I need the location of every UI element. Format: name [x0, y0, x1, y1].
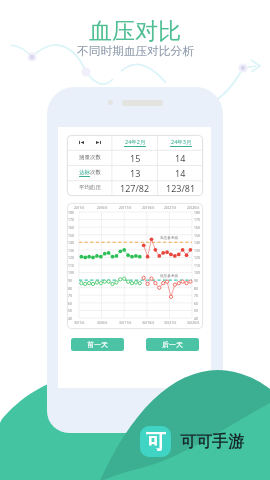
staticText: 50	[68, 308, 72, 313]
button[interactable]: 后一天	[146, 338, 199, 351]
staticText: 110	[194, 263, 200, 268]
staticText: 90	[68, 278, 72, 283]
staticText: 后一天	[162, 340, 183, 349]
staticText: 160	[194, 225, 200, 230]
staticText: 80	[68, 286, 72, 291]
staticText: 前一天	[87, 340, 108, 349]
staticText: 2月6日	[97, 205, 108, 210]
staticText: 3月26日	[187, 320, 200, 325]
staticText: 可可手游	[180, 432, 244, 452]
staticText: 平均血压	[79, 184, 101, 191]
staticText: 123/81	[166, 182, 196, 194]
staticText: 3月21日	[164, 320, 177, 325]
staticText: 150	[194, 233, 200, 238]
staticText: 次数	[90, 169, 101, 176]
staticText: 90	[194, 278, 198, 283]
staticText: 127/82	[120, 182, 150, 194]
staticText: 高压参考线	[160, 236, 178, 241]
staticText: 80	[194, 286, 198, 291]
staticText: 13	[130, 167, 141, 179]
staticText: 3月11日	[119, 320, 132, 325]
staticText: 100	[68, 270, 74, 275]
staticText: 40	[68, 316, 72, 321]
staticText: 2月26日	[187, 205, 200, 210]
staticText: 60	[194, 301, 198, 306]
staticText: 低压参考线	[160, 274, 178, 279]
staticText: 140	[194, 240, 200, 245]
staticText: 120	[68, 255, 74, 260]
staticText: 3月6日	[97, 320, 108, 325]
staticText: 50	[194, 308, 198, 313]
staticText: 180	[194, 210, 200, 215]
staticText: 180	[68, 210, 74, 215]
staticText: 70	[194, 293, 198, 298]
staticText: 2月16日	[142, 205, 155, 210]
staticText: 140	[68, 240, 74, 245]
staticText: 60	[68, 301, 72, 306]
staticText: 130	[68, 248, 74, 253]
staticText: 可	[146, 429, 166, 454]
staticText: 2月21日	[164, 205, 177, 210]
button[interactable]: 可	[140, 426, 244, 457]
staticText: 40	[194, 316, 198, 321]
staticText: 150	[68, 233, 74, 238]
staticText: 110	[68, 263, 74, 268]
staticText: 130	[194, 248, 200, 253]
staticText: 3月1日	[74, 320, 85, 325]
staticText: 测量次数	[79, 154, 101, 161]
staticText: 15	[130, 152, 141, 164]
staticText: 70	[68, 293, 72, 298]
button[interactable]: 前一天	[71, 338, 124, 351]
staticText: 100	[194, 270, 200, 275]
staticText: 不同时期血压对比分析	[77, 44, 194, 59]
staticText: 24年3月	[171, 138, 192, 146]
staticText: 3月16日	[142, 320, 155, 325]
staticText: 2月1日	[74, 205, 85, 210]
staticText: 120	[194, 255, 200, 260]
staticText: 170	[194, 217, 200, 222]
staticText: 14	[175, 167, 186, 179]
staticText: 达标	[79, 169, 90, 176]
button[interactable]: Previous / Next period	[67, 140, 112, 145]
staticText: 2月11日	[119, 205, 132, 210]
staticText: 160	[68, 225, 74, 230]
staticText: 血压对比	[89, 17, 181, 46]
staticText: 170	[68, 217, 74, 222]
staticText: 24年2月	[125, 138, 146, 146]
staticText: 14	[175, 152, 186, 164]
